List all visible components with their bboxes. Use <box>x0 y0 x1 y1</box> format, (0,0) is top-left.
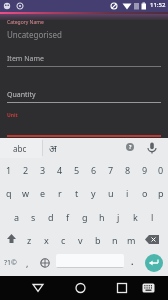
button[interactable]: m <box>123 228 140 251</box>
button[interactable] <box>141 228 166 251</box>
staticText: Uncategorised <box>7 29 62 40</box>
staticText: ?1© <box>4 258 17 268</box>
button[interactable]: Quantity <box>0 86 168 106</box>
button[interactable]: . <box>126 251 138 271</box>
staticText: Item Name <box>7 54 44 64</box>
staticText: f <box>66 211 70 223</box>
staticText: ? <box>129 144 132 151</box>
staticText: e <box>40 187 46 199</box>
button[interactable] <box>145 140 159 156</box>
button[interactable]: 8 <box>119 158 136 181</box>
staticText: m <box>127 234 136 246</box>
staticText: 9 <box>142 164 148 176</box>
button[interactable]: abc <box>6 140 34 156</box>
staticText: , <box>26 257 29 269</box>
staticText: h <box>99 211 105 223</box>
button[interactable] <box>140 278 157 298</box>
staticText: 8 <box>125 164 131 176</box>
staticText: 2 <box>23 164 29 176</box>
button[interactable]: i <box>119 181 136 204</box>
button[interactable] <box>110 278 134 298</box>
staticText: j <box>117 211 120 223</box>
button[interactable]: 0 <box>153 158 168 181</box>
button[interactable]: l <box>144 205 161 228</box>
staticText: Category Name <box>7 19 44 26</box>
staticText: a <box>14 211 20 223</box>
staticText: 1 <box>6 164 12 176</box>
staticText: p <box>158 187 164 199</box>
button[interactable]: z <box>21 228 38 251</box>
button[interactable]: t <box>68 181 85 204</box>
staticText: 6 <box>91 164 97 176</box>
staticText: n <box>112 234 118 246</box>
staticText: 3 <box>40 164 46 176</box>
staticText: d <box>48 211 54 223</box>
button[interactable]: e <box>34 181 51 204</box>
button[interactable]: 5 <box>68 158 85 181</box>
button[interactable]: , <box>20 253 34 273</box>
staticText: b <box>95 234 101 246</box>
staticText: अ <box>49 141 57 155</box>
button[interactable]: y <box>85 181 102 204</box>
staticText: 5 <box>74 164 80 176</box>
button[interactable]: अ <box>44 140 62 156</box>
button[interactable]: s <box>25 205 42 228</box>
staticText: k <box>133 211 138 223</box>
button[interactable]: c <box>55 228 72 251</box>
button[interactable]: j <box>110 205 127 228</box>
button[interactable]: d <box>42 205 59 228</box>
staticText: abc <box>13 143 27 154</box>
button[interactable]: w <box>17 181 34 204</box>
button[interactable] <box>145 254 163 272</box>
staticText: l <box>151 211 154 223</box>
button[interactable]: 3 <box>34 158 51 181</box>
button[interactable]: ?1© <box>1 253 20 273</box>
staticText: s <box>31 211 36 223</box>
button[interactable]: h <box>93 205 110 228</box>
staticText: 0 <box>158 164 164 176</box>
staticText: i <box>126 187 129 199</box>
button[interactable]: a <box>8 205 25 228</box>
button[interactable]: k <box>127 205 144 228</box>
staticText: 11:52 <box>150 1 166 9</box>
staticText: g <box>82 211 88 223</box>
button[interactable]: v <box>72 228 89 251</box>
button[interactable]: Category Name <box>0 18 168 46</box>
button[interactable]: 4 <box>51 158 68 181</box>
staticText: w <box>22 187 30 199</box>
button[interactable]: n <box>106 228 123 251</box>
button[interactable]: x <box>38 228 55 251</box>
button[interactable]: 2 <box>17 158 34 181</box>
button[interactable]: f <box>59 205 76 228</box>
button[interactable] <box>56 254 124 268</box>
staticText: r <box>58 187 62 199</box>
staticText: z <box>27 234 32 246</box>
staticText: c <box>61 234 66 246</box>
staticText: Unit <box>7 112 18 119</box>
button[interactable]: q <box>0 181 17 204</box>
button[interactable]: Unit <box>0 110 168 137</box>
button[interactable]: Item Name <box>0 50 168 70</box>
staticText: 7 <box>108 164 114 176</box>
staticText: y <box>91 187 96 199</box>
staticText: u <box>108 187 114 199</box>
button[interactable]: r <box>51 181 68 204</box>
button[interactable] <box>68 278 93 298</box>
button[interactable] <box>39 256 51 270</box>
button[interactable]: o <box>136 181 153 204</box>
button[interactable]: b <box>89 228 106 251</box>
button[interactable]: u <box>102 181 119 204</box>
staticText: . <box>131 255 134 267</box>
button[interactable] <box>2 228 21 251</box>
button[interactable]: ? <box>126 143 134 151</box>
staticText: o <box>142 187 148 199</box>
button[interactable]: 9 <box>136 158 153 181</box>
button[interactable] <box>26 278 50 298</box>
button[interactable]: p <box>153 181 168 204</box>
button[interactable]: 7 <box>102 158 119 181</box>
staticText: v <box>78 234 83 246</box>
button[interactable]: 6 <box>85 158 102 181</box>
button[interactable]: 1 <box>0 158 17 181</box>
button[interactable]: g <box>76 205 93 228</box>
staticText: t <box>75 187 79 199</box>
